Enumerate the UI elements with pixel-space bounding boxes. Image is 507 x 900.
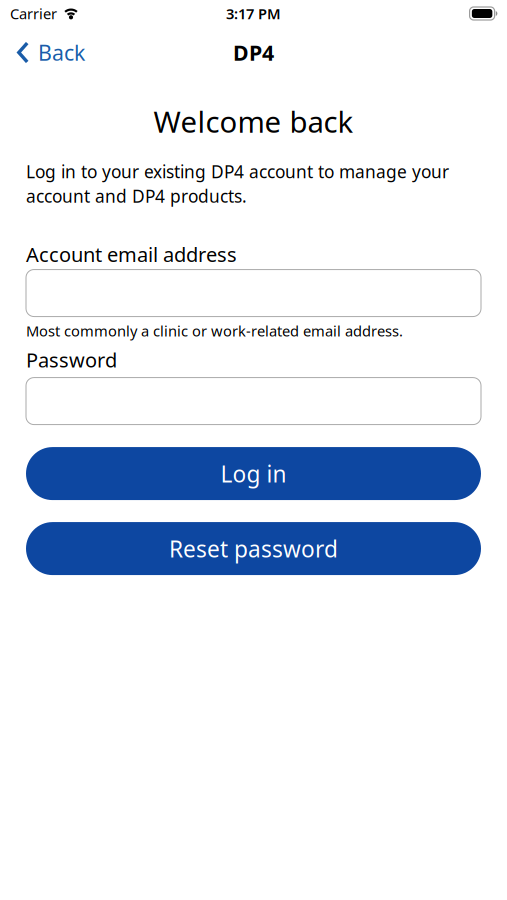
button[interactable]: Log in: [26, 447, 481, 500]
staticText: 3:17 PM: [226, 4, 281, 23]
button[interactable]: Reset password: [26, 522, 481, 575]
staticText: Back: [38, 38, 85, 67]
staticText: Log in: [220, 458, 286, 489]
staticText: Reset password: [169, 533, 338, 564]
staticText: DP4: [233, 38, 274, 67]
staticText: Password: [26, 346, 117, 373]
staticText: Account email address: [26, 241, 237, 268]
staticText: Carrier: [10, 4, 57, 23]
staticText: Log in to your existing DP4 account to m…: [26, 160, 449, 207]
button[interactable]: Back: [0, 30, 85, 75]
staticText: Most commonly a clinic or work-related e…: [26, 321, 403, 340]
staticText: Welcome back: [153, 102, 353, 141]
